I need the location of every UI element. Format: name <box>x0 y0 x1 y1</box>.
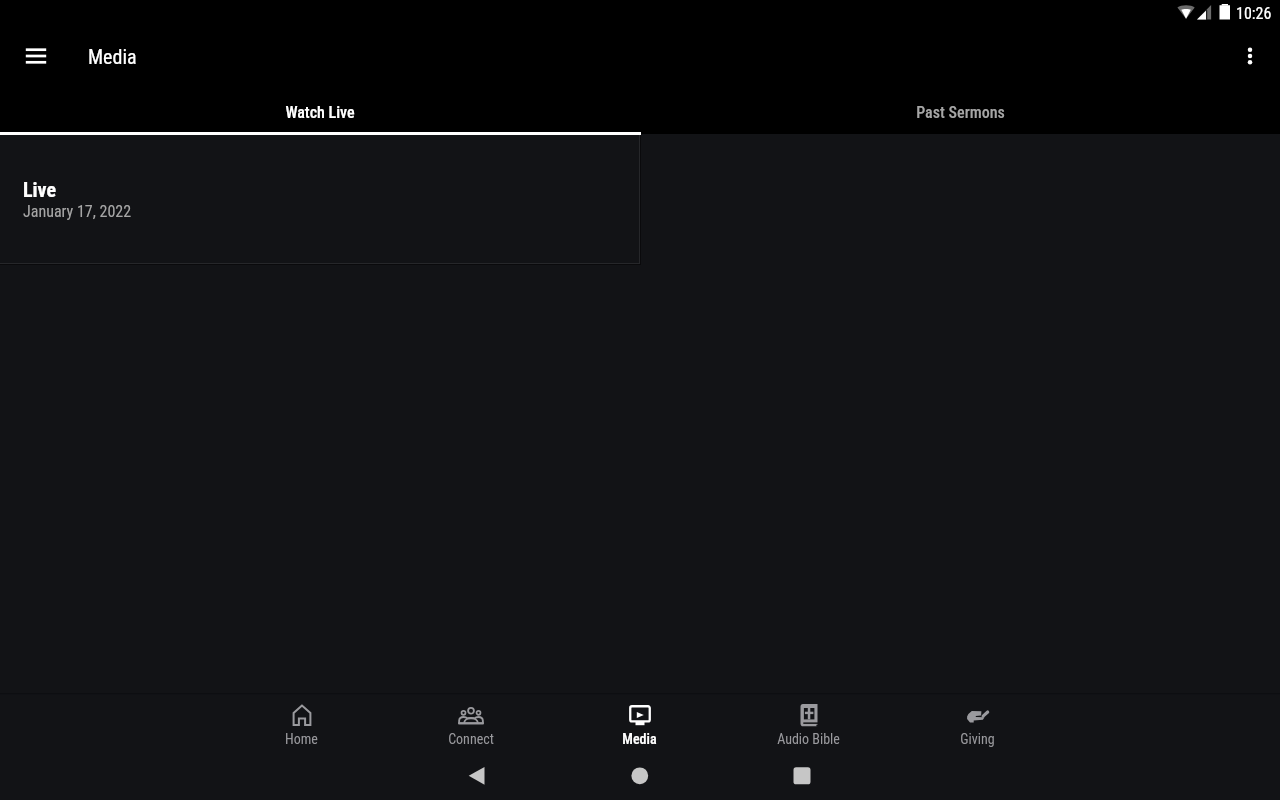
staticText: Connect <box>448 731 494 747</box>
staticText: Live <box>23 178 57 201</box>
staticText: Watch Live <box>285 103 355 122</box>
button[interactable]: Watch Live <box>0 84 640 134</box>
staticText: Past Sermons <box>916 103 1005 122</box>
button[interactable]: More options <box>1228 34 1272 78</box>
button[interactable]: Past Sermons <box>640 84 1280 134</box>
button[interactable]: Live <box>0 134 641 265</box>
staticText: January 17, 2022 <box>23 202 132 221</box>
staticText: 10:26 <box>1236 4 1272 23</box>
button[interactable]: Giving <box>893 693 1062 756</box>
button[interactable]: Open navigation menu <box>14 34 58 78</box>
staticText: Audio Bible <box>777 731 840 747</box>
button[interactable]: Home <box>217 693 386 756</box>
button[interactable]: Back <box>446 756 508 800</box>
button[interactable]: Connect <box>386 693 555 756</box>
staticText: Media <box>622 731 657 747</box>
button[interactable]: Media <box>555 693 724 756</box>
button[interactable]: Audio Bible <box>724 693 893 756</box>
staticText: Media <box>88 45 137 68</box>
staticText: Giving <box>960 731 995 747</box>
staticText: Home <box>285 731 318 747</box>
button[interactable]: Recent apps <box>771 756 833 800</box>
button[interactable]: Home <box>609 756 671 800</box>
